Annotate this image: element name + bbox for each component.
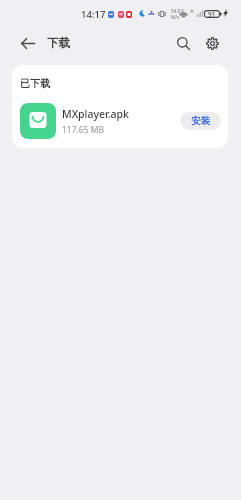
button[interactable]: Settings [199,30,225,56]
button[interactable]: MXplayer.apk [20,101,221,141]
staticText: 14:17 [81,8,106,21]
staticText: M/s [171,14,180,20]
staticText: 安装 [191,115,210,127]
staticText: 已下载 [20,77,50,90]
staticText: 54.8 K [171,8,185,14]
button[interactable]: Search [170,30,196,56]
staticText: 下载 [47,36,70,50]
button[interactable]: 安装 [180,112,221,130]
button[interactable]: Back [17,33,38,54]
staticText: 117.65 MB [62,124,105,136]
staticText: MXplayer.apk [62,107,129,121]
staticText: 91 [208,10,216,18]
